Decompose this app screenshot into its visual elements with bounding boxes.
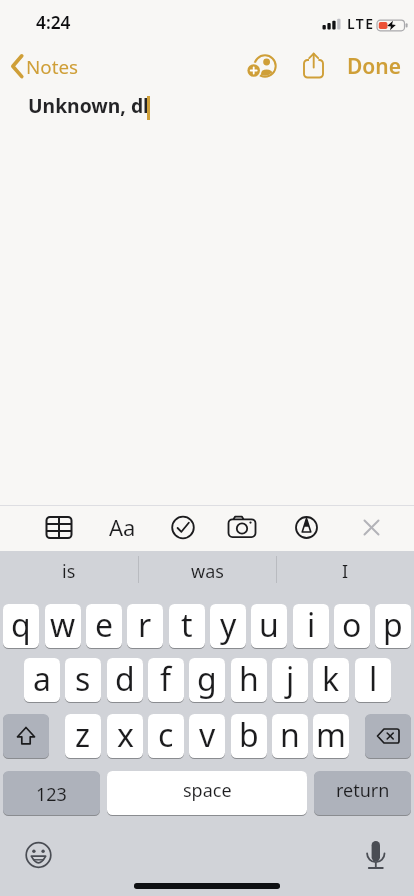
button[interactable]: q [3, 604, 39, 648]
button[interactable] [365, 714, 411, 758]
staticText: x [117, 714, 134, 757]
button[interactable] [350, 505, 394, 549]
staticText: was [191, 559, 224, 584]
staticText: return [336, 778, 390, 803]
button[interactable] [246, 48, 283, 85]
button[interactable]: v [189, 714, 225, 758]
button[interactable]: a [24, 658, 60, 702]
staticText: t [181, 604, 193, 647]
staticText: Unknown, dl [28, 92, 149, 118]
staticText: 123 [36, 782, 67, 807]
staticText: space [183, 778, 232, 803]
button[interactable] [20, 836, 58, 874]
button[interactable]: d [107, 658, 143, 702]
staticText: y [220, 604, 237, 647]
button[interactable]: b [231, 714, 267, 758]
staticText: f [160, 658, 172, 701]
button[interactable]: 123 [3, 771, 100, 815]
staticText: c [158, 714, 174, 757]
staticText: e [95, 604, 114, 647]
staticText: o [342, 604, 362, 647]
staticText: r [138, 604, 152, 647]
button[interactable] [3, 714, 49, 758]
staticText: 4:24 [36, 11, 71, 35]
button[interactable]: t [169, 604, 205, 648]
button[interactable] [37, 505, 81, 549]
button[interactable]: space [107, 771, 307, 815]
button[interactable]: was [138, 551, 276, 596]
button[interactable]: r [127, 604, 163, 648]
staticText: s [75, 658, 91, 701]
staticText: u [259, 604, 279, 647]
staticText: p [383, 604, 403, 647]
button[interactable]: I [276, 551, 414, 596]
button[interactable]: j [272, 658, 308, 702]
button[interactable]: is [0, 551, 138, 596]
staticText: I [342, 559, 349, 584]
button[interactable]: l [355, 658, 391, 702]
staticText: k [322, 658, 340, 701]
button[interactable]: m [313, 714, 349, 758]
button[interactable]: h [231, 658, 267, 702]
button[interactable] [357, 834, 395, 872]
staticText: Aa [109, 512, 136, 542]
staticText: z [75, 714, 91, 757]
button[interactable]: return [314, 771, 411, 815]
button[interactable]: u [251, 604, 287, 648]
staticText: g [197, 658, 217, 701]
button[interactable] [161, 505, 205, 549]
button[interactable]: x [107, 714, 143, 758]
staticText: l [369, 658, 378, 701]
staticText: LTE [347, 14, 375, 33]
staticText: a [33, 658, 51, 701]
button[interactable]: i [293, 604, 329, 648]
button[interactable]: o [334, 604, 370, 648]
button[interactable]: c [148, 714, 184, 758]
staticText: i [307, 604, 316, 647]
staticText: Done [347, 52, 402, 81]
staticText: q [11, 604, 31, 647]
button[interactable]: e [86, 604, 122, 648]
staticText: d [115, 658, 135, 701]
button[interactable] [296, 46, 332, 82]
button[interactable]: n [272, 714, 308, 758]
button[interactable]: p [375, 604, 411, 648]
staticText: h [239, 658, 259, 701]
staticText: j [286, 658, 295, 701]
button[interactable]: w [45, 604, 81, 648]
button[interactable]: Done [340, 48, 406, 82]
staticText: is [62, 559, 76, 584]
button[interactable]: y [210, 604, 246, 648]
staticText: m [316, 714, 346, 757]
button[interactable] [284, 505, 329, 549]
staticText: n [280, 714, 300, 757]
button[interactable]: g [189, 658, 225, 702]
staticText: Notes [26, 54, 79, 80]
staticText: b [239, 714, 259, 757]
button[interactable] [220, 505, 264, 549]
button[interactable]: Aa [100, 505, 145, 549]
button[interactable]: k [313, 658, 349, 702]
button[interactable]: f [148, 658, 184, 702]
button[interactable]: Notes [6, 48, 82, 84]
button[interactable]: z [65, 714, 101, 758]
staticText: w [50, 604, 76, 647]
button[interactable]: s [65, 658, 101, 702]
staticText: v [199, 714, 216, 757]
